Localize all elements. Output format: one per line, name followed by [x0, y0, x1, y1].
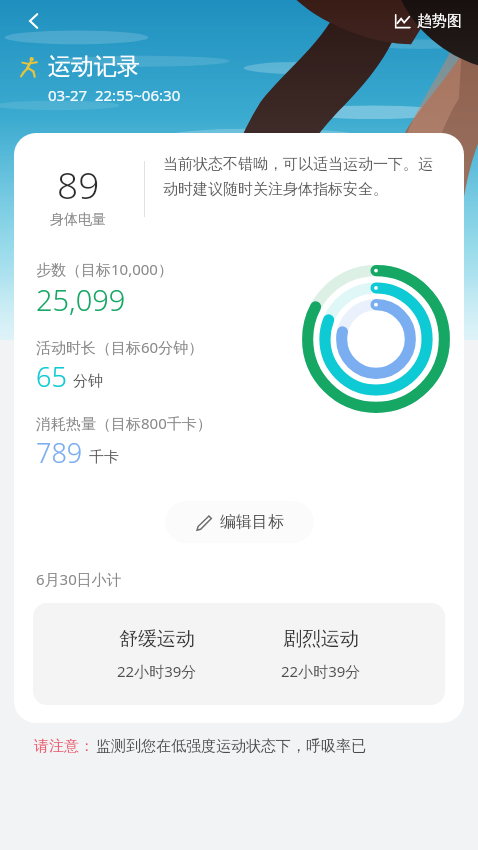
staticText: 89	[57, 159, 100, 209]
staticText: 监测到您在低强度运动状态下，呼吸率已	[96, 737, 366, 756]
staticText: 22小时39分	[281, 661, 361, 681]
staticText: 趋势图	[417, 12, 462, 31]
staticText: 编辑目标	[220, 512, 284, 532]
staticText: 运动记录	[48, 52, 140, 81]
staticText: 65	[36, 358, 67, 395]
staticText: 步数（目标10,000）	[36, 259, 173, 279]
staticText: 分钟	[73, 372, 103, 391]
staticText: 789	[36, 434, 83, 471]
staticText: 03-27 22:55~06:30	[48, 85, 181, 105]
staticText: 身体电量	[50, 211, 106, 229]
staticText: 舒缓运动	[119, 627, 195, 651]
staticText: 22小时39分	[117, 661, 197, 681]
staticText: 剧烈运动	[283, 627, 359, 651]
staticText: 千卡	[89, 448, 119, 467]
button[interactable]: Back	[14, 1, 54, 41]
staticText: 25,099	[36, 280, 126, 319]
button[interactable]: 编辑目标	[165, 501, 314, 543]
staticText: 消耗热量（目标800千卡）	[36, 413, 212, 433]
staticText: 6月30日小计	[36, 569, 122, 589]
button[interactable]: 趋势图	[392, 8, 464, 35]
staticText: 请注意：	[34, 737, 94, 756]
staticText: 活动时长（目标60分钟）	[36, 337, 204, 357]
staticText: 当前状态不错呦，可以适当运动一下。运动时建议随时关注身体指标安全。	[163, 155, 444, 198]
